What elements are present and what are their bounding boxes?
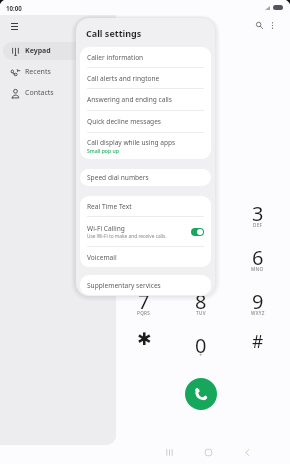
staticText: 10:00 xyxy=(6,4,22,12)
staticText: Call alerts and ringtone xyxy=(87,74,160,83)
staticText: Quick decline messages xyxy=(87,117,162,126)
staticText: WXYZ xyxy=(251,310,265,316)
button[interactable]: 0 xyxy=(172,327,229,371)
staticText: 7 xyxy=(138,288,150,315)
button[interactable]: Call display while using apps xyxy=(80,133,211,159)
staticText: 6 xyxy=(252,244,264,271)
button[interactable]: 3 xyxy=(229,195,286,239)
button[interactable]: Back xyxy=(228,443,267,462)
button[interactable]: 5 xyxy=(172,239,229,283)
staticText: Recents xyxy=(25,67,51,77)
staticText: TUV xyxy=(196,310,206,316)
staticText: Speed dial numbers xyxy=(87,173,149,182)
staticText: Small pop up xyxy=(87,147,119,154)
staticText: Call settings xyxy=(86,27,142,39)
button[interactable]: Caller information xyxy=(80,47,211,67)
staticText: 2 xyxy=(195,200,207,227)
button[interactable]: Search xyxy=(248,17,264,33)
staticText: 0 xyxy=(195,332,207,359)
button[interactable]: 9 xyxy=(229,283,286,327)
staticText: 3 xyxy=(252,200,264,227)
button[interactable]: 8 xyxy=(172,283,229,327)
button[interactable]: Supplementary services xyxy=(80,275,211,295)
staticText: GHI xyxy=(139,266,149,272)
button[interactable]: 1 xyxy=(116,195,172,239)
staticText: MNO xyxy=(251,266,264,272)
button[interactable]: Menu xyxy=(5,17,23,35)
staticText: + xyxy=(199,351,203,359)
staticText: 1 xyxy=(138,200,150,227)
staticText: Use Wi-Fi to make and receive calls. xyxy=(87,233,167,240)
staticText: # xyxy=(252,329,264,353)
button[interactable]: More options xyxy=(264,17,280,33)
button[interactable]: Recent apps xyxy=(149,443,189,462)
button[interactable]: Answering and ending calls xyxy=(80,89,211,110)
button[interactable]: Speed dial numbers xyxy=(80,169,211,186)
button[interactable]: Home xyxy=(189,443,228,462)
button[interactable]: 4 xyxy=(116,239,172,283)
staticText: Call display while using apps xyxy=(87,138,176,147)
staticText: Wi-Fi Calling xyxy=(87,224,125,233)
staticText: 4 xyxy=(138,244,150,271)
button[interactable]: # xyxy=(229,327,286,371)
button[interactable]: ✱ xyxy=(116,327,172,371)
button[interactable]: Keypad xyxy=(3,42,110,60)
staticText: JKL xyxy=(197,266,205,272)
staticText: Real Time Text xyxy=(87,202,132,211)
staticText: Contacts xyxy=(25,88,54,98)
button[interactable]: Quick decline messages xyxy=(80,111,211,132)
button[interactable]: Recents xyxy=(3,63,110,81)
button[interactable]: Call xyxy=(185,378,217,410)
staticText: 9 xyxy=(252,288,264,315)
button[interactable]: Call alerts and ringtone xyxy=(80,68,211,88)
staticText: PQRS xyxy=(137,310,151,316)
staticText: DEF xyxy=(253,222,263,228)
staticText: Caller information xyxy=(87,53,144,62)
staticText: Voicemail xyxy=(87,253,117,262)
button[interactable]: Contacts xyxy=(3,84,110,102)
button[interactable]: Voicemail xyxy=(80,247,211,267)
staticText: 8 xyxy=(195,288,207,315)
staticText: ✱ xyxy=(137,329,152,349)
staticText: Answering and ending calls xyxy=(87,95,172,104)
staticText: Supplementary services xyxy=(87,281,161,290)
button[interactable]: 7 xyxy=(116,283,172,327)
button[interactable]: 2 xyxy=(172,195,229,239)
staticText: 5 xyxy=(195,244,207,271)
button[interactable]: 6 xyxy=(229,239,286,283)
staticText: Keypad xyxy=(25,46,51,56)
button[interactable]: Wi-Fi Calling xyxy=(80,217,211,246)
button[interactable]: Real Time Text xyxy=(80,196,211,216)
